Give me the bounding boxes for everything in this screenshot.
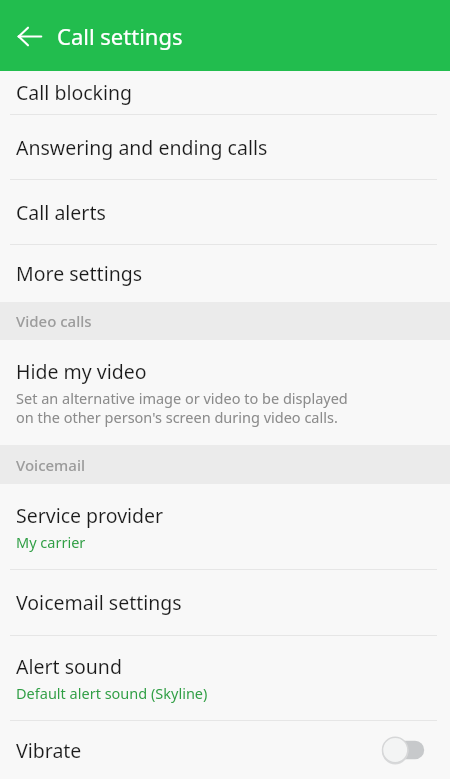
button[interactable]: Navigate up	[7, 14, 51, 58]
staticText: My carrier	[16, 532, 86, 552]
staticText: Vibrate	[16, 737, 82, 764]
staticText: Voicemail settings	[16, 589, 182, 616]
staticText: Set an alternative image or video to be …	[16, 388, 348, 427]
staticText: Voicemail	[16, 455, 86, 475]
button[interactable]: Vibrate	[0, 721, 450, 779]
button[interactable]: Voicemail settings	[0, 570, 450, 635]
button[interactable]: Call blocking	[0, 71, 450, 114]
button[interactable]: Vibrate, off	[374, 730, 436, 770]
staticText: Answering and ending calls	[16, 134, 268, 161]
staticText: Call alerts	[16, 199, 106, 226]
staticText: Hide my video	[16, 358, 147, 385]
staticText: Call settings	[57, 21, 183, 51]
staticText: Video calls	[16, 311, 92, 331]
button[interactable]: More settings	[0, 245, 450, 302]
staticText: Default alert sound (Skyline)	[16, 683, 208, 703]
staticText: More settings	[16, 260, 143, 287]
button[interactable]: Call alerts	[0, 180, 450, 244]
staticText: Service provider	[16, 502, 164, 529]
button[interactable]: Service provider	[0, 484, 450, 569]
button[interactable]: Hide my video	[0, 340, 450, 445]
button[interactable]: Answering and ending calls	[0, 115, 450, 179]
staticText: Alert sound	[16, 653, 122, 680]
button[interactable]: Alert sound	[0, 636, 450, 720]
staticText: Call blocking	[16, 79, 133, 106]
